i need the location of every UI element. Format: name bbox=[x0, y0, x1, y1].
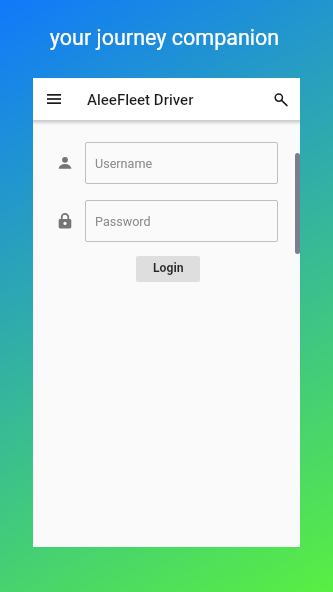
staticText: Login bbox=[153, 261, 184, 275]
button[interactable]: Password bbox=[85, 200, 278, 242]
staticText: Password bbox=[95, 214, 151, 229]
staticText: AleeFleet Driver bbox=[87, 91, 194, 109]
button[interactable]: Search bbox=[259, 79, 300, 121]
button[interactable]: Login bbox=[136, 256, 200, 282]
button[interactable]: Open navigation menu bbox=[33, 79, 74, 121]
staticText: your journey companion bbox=[0, 25, 331, 50]
staticText: Username bbox=[95, 156, 153, 171]
button[interactable]: Username bbox=[85, 142, 278, 184]
